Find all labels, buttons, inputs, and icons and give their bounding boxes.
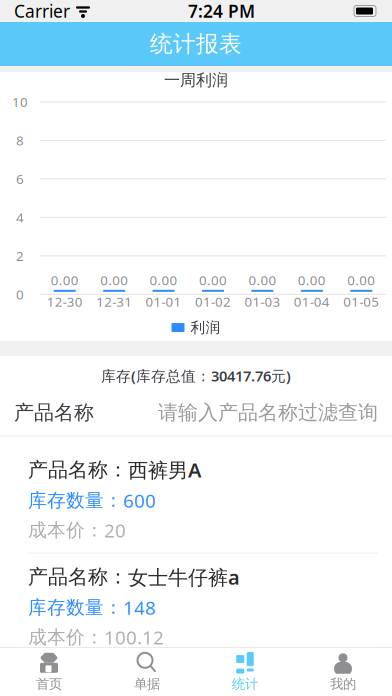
staticText: 148 [123, 595, 156, 620]
button[interactable]: 产品名称： [14, 661, 378, 696]
staticText: 0.00 [248, 271, 276, 289]
staticText: 8 [16, 131, 24, 149]
staticText: 0.00 [199, 271, 227, 289]
staticText: 一周利润 [164, 70, 228, 90]
staticText: 0.00 [51, 271, 79, 289]
staticText: 女士牛仔裤a [128, 564, 240, 590]
staticText: 单据 [134, 676, 160, 692]
staticText: 利润 [190, 318, 220, 336]
staticText: 01-01 [146, 293, 182, 310]
staticText: 7:24 PM [188, 0, 255, 22]
staticText: 01-05 [343, 293, 379, 310]
button[interactable]: 产品名称： [14, 554, 378, 661]
staticText: 成本价： [28, 626, 104, 649]
staticText: 4 [16, 208, 24, 226]
staticText: 首页 [36, 676, 62, 692]
button[interactable]: 产品名称 [0, 395, 392, 429]
staticText: 12-31 [96, 293, 132, 310]
staticText: 0.00 [298, 271, 326, 289]
staticText: 01-04 [294, 293, 330, 310]
button[interactable]: 单据 [98, 648, 196, 696]
staticText: 0.00 [347, 271, 375, 289]
staticText: 女士牛仔裤b [128, 671, 241, 696]
staticText: 统计报表 [150, 30, 242, 58]
staticText: 产品名称： [28, 457, 128, 482]
staticText: Carrier [14, 0, 70, 22]
staticText: 统计 [232, 676, 258, 692]
staticText: 库存(库存总值：30417.76元) [101, 366, 291, 385]
staticText: 库存数量： [28, 489, 123, 512]
staticText: 库存数量： [28, 596, 123, 619]
staticText: 0 [16, 285, 24, 303]
button[interactable]: 我的 [294, 648, 392, 696]
staticText: 西裤男A [128, 456, 201, 483]
staticText: 我的 [330, 676, 356, 692]
staticText: 产品名称： [28, 672, 128, 696]
staticText: 10 [12, 93, 28, 111]
staticText: 产品名称： [28, 565, 128, 589]
button[interactable]: 统计 [196, 648, 294, 696]
staticText: 01-02 [195, 293, 231, 310]
staticText: 2 [16, 247, 24, 265]
button[interactable]: 产品名称： [14, 446, 378, 554]
staticText: 12-30 [47, 293, 83, 310]
staticText: 01-03 [244, 293, 280, 310]
staticText: 请输入产品名称过滤查询 [158, 400, 378, 425]
button[interactable]: 首页 [0, 648, 98, 696]
staticText: 0.00 [100, 271, 128, 289]
staticText: 20 [104, 518, 126, 543]
staticText: 600 [123, 488, 156, 513]
staticText: 成本价： [28, 519, 104, 542]
staticText: 100.12 [104, 625, 164, 650]
staticText: 产品名称 [14, 400, 94, 425]
staticText: 0.00 [150, 271, 178, 289]
staticText: 6 [16, 170, 24, 188]
